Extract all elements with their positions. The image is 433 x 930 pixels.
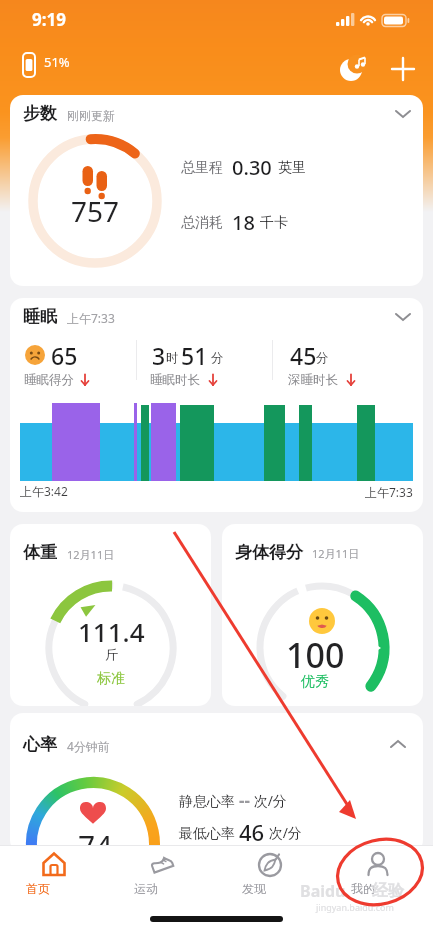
staticText: 45 (290, 340, 317, 371)
staticText: 100 (286, 632, 345, 678)
staticText: 4分钟前 (67, 738, 110, 754)
staticText: 74 (78, 826, 113, 853)
button[interactable]: 步数 (10, 95, 423, 286)
button[interactable]: 睡眠 (10, 298, 423, 512)
staticText: 睡眠得分 (24, 372, 74, 388)
staticText: 分 (211, 350, 224, 366)
button[interactable]: 心率 (10, 713, 423, 853)
button[interactable]: 运动 (108, 845, 216, 912)
staticText: -- (239, 789, 250, 812)
staticText: 上午7:33 (365, 484, 413, 500)
staticText: 发现 (242, 881, 266, 896)
staticText: 步数 (23, 103, 57, 124)
staticText: 首页 (26, 881, 50, 896)
staticText: 分 (316, 350, 329, 366)
staticText: 心率 (23, 734, 57, 755)
staticText: 上午3:42 (20, 483, 68, 499)
button[interactable]: 我的 (324, 845, 433, 912)
staticText: 次/分 (250, 791, 287, 810)
staticText: 经验 (372, 881, 404, 901)
staticText: 12月11日 (312, 546, 360, 561)
button[interactable] (338, 54, 368, 84)
staticText: 65 (51, 340, 78, 371)
button[interactable]: 首页 (0, 845, 108, 912)
staticText: 我的 (351, 881, 375, 896)
staticText: Baidu (300, 880, 346, 902)
staticText: 111.4 (78, 614, 145, 649)
staticText: 优秀 (301, 673, 329, 691)
staticText: 睡眠时长 (150, 372, 200, 388)
staticText: 刚刚更新 (67, 108, 115, 123)
staticText: 深睡时长 (288, 372, 338, 388)
button[interactable]: 体重 (10, 524, 211, 706)
staticText: 3 (152, 340, 166, 371)
staticText: 运动 (134, 881, 158, 896)
staticText: 体重 (23, 542, 57, 563)
button[interactable]: 发现 (216, 845, 324, 912)
staticText: 身体得分 (235, 542, 303, 563)
button[interactable]: 51% (14, 48, 104, 82)
staticText: 千卡 (260, 214, 288, 232)
staticText: 睡眠 (23, 306, 57, 327)
staticText: 时 (166, 350, 179, 366)
staticText: 46 (239, 817, 265, 847)
staticText: 次/分 (265, 823, 302, 842)
staticText: 最低心率 (179, 823, 239, 842)
staticText: 总消耗 (181, 214, 223, 232)
staticText: 757 (71, 192, 120, 230)
staticText: 斤 (105, 646, 118, 662)
staticText: 标准 (97, 670, 125, 688)
button[interactable]: 身体得分 (222, 524, 423, 706)
button[interactable] (388, 54, 418, 84)
staticText: 51% (44, 53, 70, 71)
staticText: 总里程 (181, 159, 223, 177)
staticText: 英里 (278, 159, 306, 177)
staticText: jingyan.baidu.com (316, 901, 394, 913)
staticText: 12月11日 (67, 547, 115, 562)
staticText: 上午7:33 (67, 310, 115, 326)
staticText: 18 (232, 209, 255, 236)
staticText: 静息心率 (179, 791, 239, 810)
staticText: 0.30 (232, 154, 272, 181)
staticText: 51 (181, 340, 208, 371)
staticText: 9:19 (32, 8, 66, 31)
